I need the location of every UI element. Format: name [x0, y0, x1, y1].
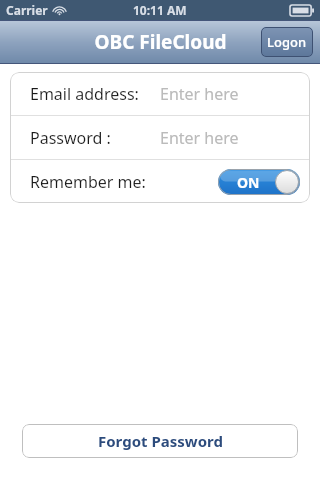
staticText: Logon	[267, 33, 307, 51]
staticText: Carrier	[6, 2, 48, 18]
staticText: Remember me:	[30, 171, 146, 193]
staticText: ON	[237, 173, 260, 192]
button[interactable]: Email address:	[10, 72, 310, 115]
staticText: Password :	[30, 127, 160, 149]
button[interactable]: Logon	[261, 27, 313, 57]
staticText: Enter here	[160, 83, 239, 105]
button[interactable]: Forgot Password	[22, 424, 298, 458]
button[interactable]: Password :	[10, 116, 310, 159]
staticText: 10:11 AM	[133, 2, 187, 18]
staticText: Enter here	[160, 127, 239, 149]
button[interactable]: Remember me toggle, on	[218, 169, 300, 195]
staticText: Forgot Password	[98, 431, 223, 451]
button[interactable]: Remember me:	[10, 160, 310, 203]
staticText: OBC FileCloud	[94, 29, 227, 55]
staticText: Email address:	[30, 83, 160, 105]
